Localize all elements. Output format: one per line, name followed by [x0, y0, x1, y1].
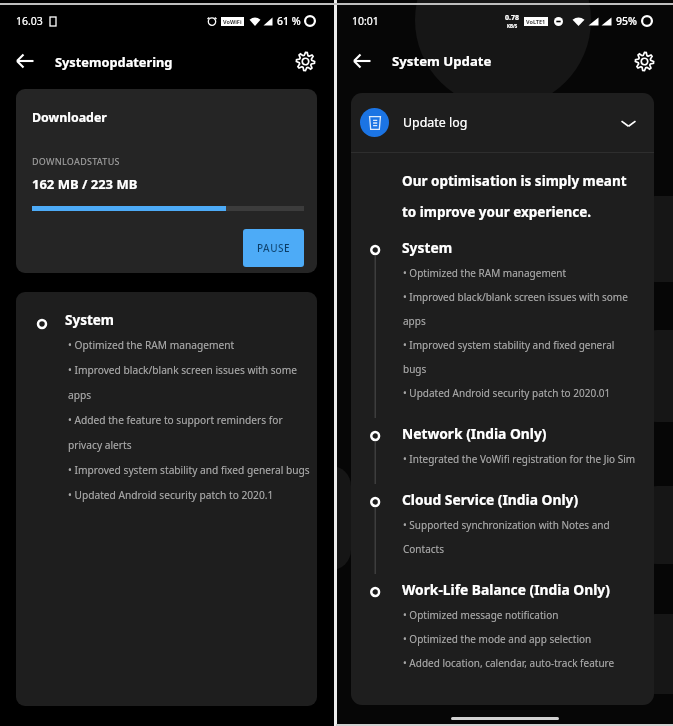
staticText: • Improved system stability and fixed ge… [68, 454, 310, 479]
staticText: • Improved black/blank screen issues wit… [403, 282, 637, 330]
staticText: • Updated Android security patch to 2020… [403, 378, 611, 402]
staticText: • Improved system stability and fixed ge… [403, 330, 637, 378]
button[interactable]: Update log [351, 93, 654, 152]
staticText: • Optimized the RAM management [403, 258, 567, 282]
staticText: 162 MB / 223 MB [32, 175, 138, 193]
staticText: • Optimized message notification [403, 600, 559, 624]
staticText: Cloud Service (India Only) [402, 490, 579, 509]
staticText: • Optimized the mode and app selection [403, 624, 592, 648]
button[interactable]: PAUSE [243, 229, 304, 267]
staticText: • Added the feature to support reminders… [68, 404, 317, 454]
staticText: Update log [403, 114, 468, 131]
staticText: Systemopdatering [55, 53, 173, 70]
staticText: 95% [616, 14, 637, 28]
other: Collapse [617, 112, 639, 134]
staticText: • Supported synchronization with Notes a… [403, 510, 637, 558]
button[interactable]: Back [8, 44, 42, 78]
staticText: KB/S [507, 23, 518, 29]
staticText: PAUSE [257, 241, 291, 255]
staticText: • Added location, calendar, auto-track f… [403, 648, 615, 672]
staticText: Work-Life Balance (India Only) [402, 580, 610, 599]
staticText: 61 % [277, 14, 301, 28]
staticText: Network (India Only) [402, 424, 547, 443]
staticText: Downloader [32, 109, 107, 126]
staticText: DOWNLOADSTATUS [32, 155, 120, 167]
staticText: Our optimisation is simply meant to impr… [402, 172, 634, 221]
staticText: System [65, 311, 115, 329]
staticText: VoWiFi [223, 18, 242, 25]
staticText: VoLTE1 [526, 18, 546, 25]
button[interactable]: Settings [627, 44, 661, 78]
staticText: • Integrated the VoWifi registration for… [403, 444, 636, 468]
staticText: • Improved black/blank screen issues wit… [68, 354, 317, 404]
button[interactable]: Back [345, 44, 379, 78]
staticText: • Optimized the RAM management [68, 329, 235, 354]
staticText: 16.03 [16, 14, 43, 28]
staticText: • Updated Android security patch to 2020… [68, 479, 274, 504]
staticText: 0.78 [505, 13, 519, 23]
staticText: System [402, 238, 453, 257]
staticText: System Update [392, 52, 492, 70]
button[interactable]: Settings [288, 44, 322, 78]
staticText: 10:01 [352, 14, 379, 28]
